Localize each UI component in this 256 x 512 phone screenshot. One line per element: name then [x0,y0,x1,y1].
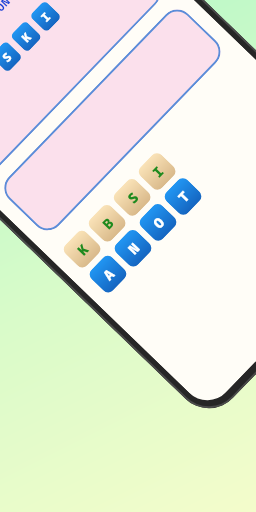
button[interactable]: T [162,175,204,218]
staticText: S [123,187,143,207]
button[interactable]: I [29,0,62,33]
button[interactable] [0,3,227,237]
staticText: K [73,239,93,259]
button[interactable]: K [61,228,103,270]
staticText: I [37,8,54,25]
staticText: B [98,213,118,233]
staticText: TO SLIDE DOWN A SNOWY MOUNTAIN ON PLANKS [0,0,56,69]
button[interactable]: K [10,20,42,53]
staticText: K [17,28,35,45]
button[interactable]: S [0,40,23,73]
button[interactable]: N [112,227,154,269]
staticText: N [124,238,144,258]
staticText: O [149,212,169,232]
staticText: S [0,48,15,65]
button[interactable]: A [87,253,129,295]
button[interactable]: I [136,150,178,193]
staticText: I [148,162,168,181]
staticText: A [99,264,119,284]
button[interactable]: S [111,176,153,218]
button[interactable]: TO SLIDE DOWN A SNOWY MOUNTAIN ON PLANKS [0,0,167,179]
button[interactable]: B [86,202,128,244]
staticText: T [174,187,194,206]
button[interactable]: O [137,201,179,243]
